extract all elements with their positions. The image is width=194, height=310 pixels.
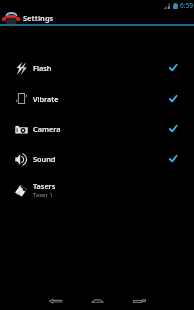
button[interactable]: Settings	[0, 11, 194, 24]
staticText: 6:59	[180, 1, 194, 10]
button[interactable]: Sound	[0, 144, 194, 174]
staticText: Camera	[33, 124, 61, 134]
button[interactable]: Recent apps	[128, 294, 150, 308]
button[interactable]: Home	[86, 294, 108, 308]
staticText: Vibrate	[33, 94, 59, 104]
button[interactable]: Camera	[0, 114, 194, 144]
button[interactable]: Vibrate	[0, 83, 194, 114]
staticText: Tasers	[33, 181, 56, 191]
staticText: Settings	[23, 13, 54, 23]
staticText: Sound	[33, 154, 56, 164]
button[interactable]: Back	[44, 294, 66, 308]
staticText: Taser 1	[33, 191, 53, 199]
button[interactable]: Tasers	[0, 174, 194, 206]
staticText: Flash	[33, 63, 52, 73]
button[interactable]: Flash	[0, 53, 194, 83]
